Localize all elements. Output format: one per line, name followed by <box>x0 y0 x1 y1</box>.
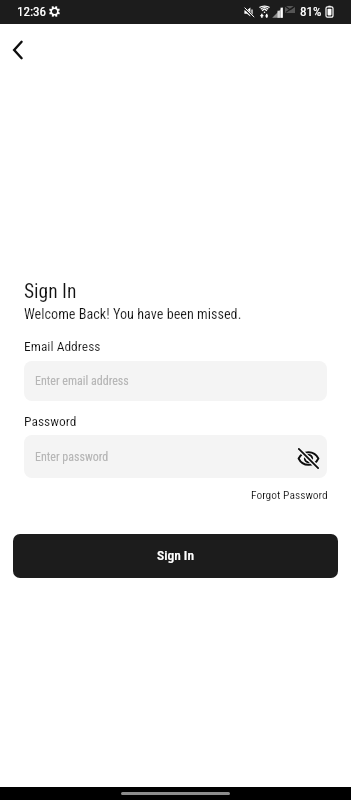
button[interactable]: Show password <box>295 445 322 472</box>
button[interactable]: Enter password <box>24 435 327 478</box>
staticText: Sign In <box>24 280 77 303</box>
staticText: Enter email address <box>35 374 129 388</box>
button[interactable]: Sign In <box>13 534 338 578</box>
staticText: Forgot Password <box>251 488 328 501</box>
staticText: 81% <box>300 4 322 19</box>
staticText: Sign In <box>157 547 194 563</box>
button[interactable]: Enter email address <box>24 361 327 401</box>
staticText: Password <box>24 413 77 429</box>
button[interactable]: Forgot Password <box>249 485 330 504</box>
staticText: Welcome Back! You have been missed. <box>24 306 242 323</box>
button[interactable]: Back <box>0 30 38 70</box>
staticText: Enter password <box>35 450 109 464</box>
staticText: 12:36 <box>17 4 47 19</box>
staticText: Email Address <box>24 338 101 354</box>
